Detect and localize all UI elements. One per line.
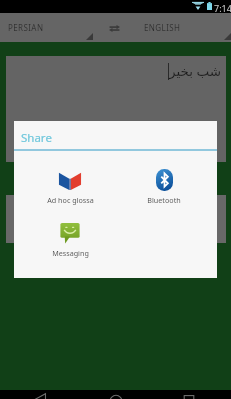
staticText: 7:14 <box>214 2 231 14</box>
button[interactable]: PERSIAN <box>0 13 93 42</box>
button[interactable]: Ad hoc glossa <box>23 166 117 208</box>
staticText: شب بخير <box>169 62 222 80</box>
button[interactable]: Home <box>107 390 125 399</box>
button[interactable]: Copy <box>120 195 226 243</box>
staticText: PERSIAN <box>8 22 44 33</box>
button[interactable]: Speak <box>6 195 112 243</box>
staticText: ENGLISH <box>144 22 181 33</box>
staticText: Ad hoc glossa <box>47 195 94 205</box>
staticText: Bluetooth <box>147 195 181 205</box>
staticText: Speak <box>45 212 74 226</box>
button[interactable]: Swap languages <box>101 15 127 41</box>
button[interactable]: Back <box>33 390 49 399</box>
button[interactable]: Messaging <box>23 219 117 261</box>
button[interactable]: ENGLISH <box>138 13 231 42</box>
button[interactable]: Bluetooth <box>117 166 211 208</box>
staticText: Messaging <box>52 248 89 258</box>
button[interactable]: Recents <box>181 390 197 399</box>
staticText: Share <box>21 130 52 146</box>
